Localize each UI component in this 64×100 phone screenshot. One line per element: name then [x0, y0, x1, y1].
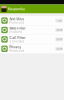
- staticText: Privacy: [9, 45, 21, 49]
- staticText: Kaspersky: [8, 7, 25, 11]
- staticText: Protected: [9, 21, 24, 24]
- button[interactable]: Account: [1, 6, 7, 12]
- staticText: Anti-Virus: [9, 17, 24, 21]
- staticText: Open: [56, 28, 62, 32]
- staticText: Protected: [9, 49, 24, 53]
- staticText: Call Filter: [9, 36, 25, 40]
- staticText: Open: [56, 38, 62, 41]
- button[interactable]: Call Filter: [0, 35, 64, 44]
- staticText: Web Filter: [9, 26, 25, 30]
- staticText: 3 blocked: [9, 40, 24, 43]
- button[interactable]: Anti-Virus: [0, 16, 64, 25]
- staticText: Enabled: [9, 30, 22, 34]
- staticText: Open: [56, 47, 62, 50]
- button[interactable]: Privacy: [0, 44, 64, 53]
- staticText: Scan: [56, 19, 61, 22]
- button[interactable]: Web Filter: [0, 25, 64, 34]
